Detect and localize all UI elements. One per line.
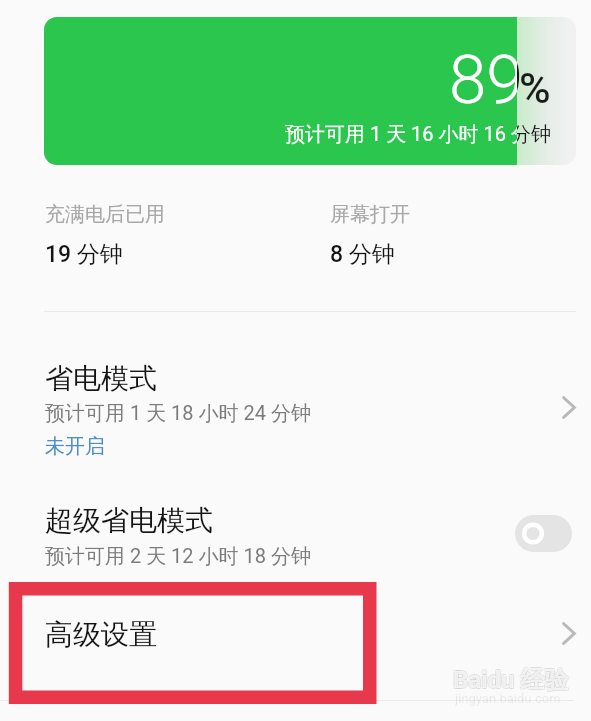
staticText: 预计可用 2 天 12 小时 18 分钟	[45, 544, 311, 569]
staticText: 充满电后已用	[45, 202, 165, 227]
staticText: Baidu 经验	[453, 666, 569, 696]
staticText: Baidu 经验	[454, 665, 570, 695]
staticText: 高级设置	[45, 617, 157, 652]
staticText: 预计可用 1 天 16 小时 16 分钟	[285, 122, 551, 147]
staticText: 未开启	[45, 434, 105, 459]
button[interactable]: 高级设置	[0, 598, 591, 672]
staticText: 89	[449, 41, 524, 120]
staticText: Baidu 经验	[454, 666, 570, 696]
staticText: 8 分钟	[330, 240, 395, 269]
button[interactable]: 89	[44, 17, 576, 165]
staticText: Baidu 经验	[453, 664, 569, 694]
staticText: 超级省电模式	[45, 503, 213, 538]
button[interactable]: 超级省电模式	[0, 490, 591, 580]
staticText: 19 分钟	[45, 240, 123, 269]
staticText: 屏幕打开	[330, 202, 410, 227]
staticText: 89	[449, 41, 524, 120]
staticText: Baidu 经验	[452, 665, 568, 695]
staticText: 省电模式	[45, 361, 157, 396]
staticText: jingyan.baidu.com	[455, 691, 561, 706]
staticText: Baidu 经验	[453, 665, 569, 695]
button[interactable]: Toggle super power saving mode	[515, 515, 572, 552]
staticText: 预计可用 1 天 18 小时 24 分钟	[45, 401, 311, 426]
staticText: %	[519, 63, 551, 113]
staticText: 预计可用 1 天 16 小时 16 分钟	[285, 122, 551, 147]
staticText: Baidu 经验	[452, 666, 568, 696]
staticText: Baidu 经验	[454, 664, 570, 694]
staticText: Baidu 经验	[452, 664, 568, 694]
staticText: %	[519, 63, 551, 113]
button[interactable]: 省电模式	[0, 340, 591, 475]
